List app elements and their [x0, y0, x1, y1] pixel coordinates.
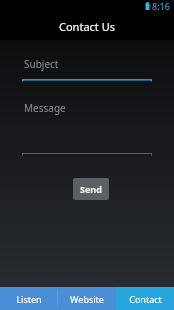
- staticText: 8:16: [152, 0, 170, 12]
- staticText: Message: [24, 101, 66, 115]
- staticText: Send: [80, 183, 102, 195]
- button[interactable]: Contact: [116, 287, 174, 310]
- button[interactable]: Subject input field: [22, 56, 152, 82]
- button[interactable]: Message input field: [22, 100, 152, 156]
- other: Battery: [145, 2, 150, 10]
- staticText: Contact: [129, 293, 162, 305]
- staticText: Website: [70, 293, 104, 305]
- staticText: Contact Us: [59, 19, 115, 34]
- button[interactable]: Listen: [0, 287, 58, 310]
- button[interactable]: Website: [58, 287, 116, 310]
- staticText: Listen: [16, 293, 42, 305]
- button[interactable]: Send: [73, 178, 109, 200]
- staticText: Subject: [24, 57, 59, 71]
